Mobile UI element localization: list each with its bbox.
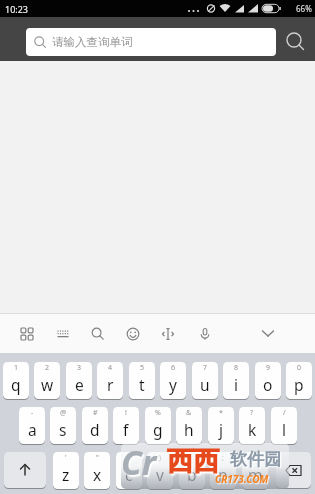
staticText: q	[11, 374, 21, 395]
staticText: c	[125, 464, 133, 485]
staticText: ?	[250, 408, 254, 418]
staticText: y	[169, 374, 177, 395]
staticText: g	[153, 419, 163, 440]
staticText: r	[107, 374, 114, 395]
staticText: -	[31, 408, 34, 418]
staticText: v	[156, 464, 164, 485]
staticText: 4	[108, 363, 113, 373]
staticText: 1	[14, 363, 19, 373]
staticText: 9	[266, 363, 271, 373]
staticText: a	[28, 419, 37, 440]
staticText: )	[159, 453, 162, 463]
staticText: 5	[140, 363, 145, 373]
staticText: x	[93, 464, 102, 485]
staticText: &	[186, 408, 192, 418]
staticText: 7	[203, 363, 208, 373]
staticText: :	[191, 453, 193, 463]
staticText: p	[294, 374, 304, 395]
staticText: j	[219, 419, 223, 440]
staticText: 2	[45, 363, 50, 373]
staticText: e	[75, 374, 84, 395]
staticText: h	[184, 419, 194, 440]
staticText: '	[65, 453, 67, 463]
staticText: Cr	[121, 443, 157, 485]
staticText: #	[93, 408, 98, 418]
staticText: s	[59, 419, 67, 440]
staticText: /	[283, 408, 286, 418]
staticText: t	[139, 374, 145, 395]
staticText: 请输入查询单词	[52, 35, 133, 49]
staticText: d	[90, 419, 100, 440]
staticText: 0	[297, 363, 302, 373]
staticText: 3	[77, 363, 82, 373]
staticText: f	[123, 419, 129, 440]
staticText: 6	[171, 363, 176, 373]
staticText: k	[248, 419, 257, 440]
staticText: "	[96, 453, 99, 463]
staticText: 8	[234, 363, 239, 373]
staticText: *	[219, 408, 223, 418]
staticText: m	[248, 464, 263, 485]
staticText: w	[41, 374, 54, 395]
staticText: 软件园	[230, 449, 281, 470]
staticText: b	[187, 464, 197, 485]
staticText: CR173.COM	[215, 472, 269, 486]
staticText: u	[200, 374, 210, 395]
staticText: 10:23	[5, 3, 29, 15]
staticText: n	[218, 464, 228, 485]
staticText: 66%	[296, 3, 312, 14]
staticText: @	[60, 408, 67, 418]
staticText: l	[282, 419, 286, 440]
staticText: z	[62, 464, 70, 485]
staticText: ,	[254, 453, 256, 463]
staticText: %	[155, 408, 161, 418]
staticText: ;	[222, 453, 224, 463]
staticText: i	[234, 374, 238, 395]
staticText: 西西	[167, 445, 219, 478]
staticText: o	[263, 374, 273, 395]
staticText: (	[128, 453, 131, 463]
staticText: !	[125, 408, 127, 418]
